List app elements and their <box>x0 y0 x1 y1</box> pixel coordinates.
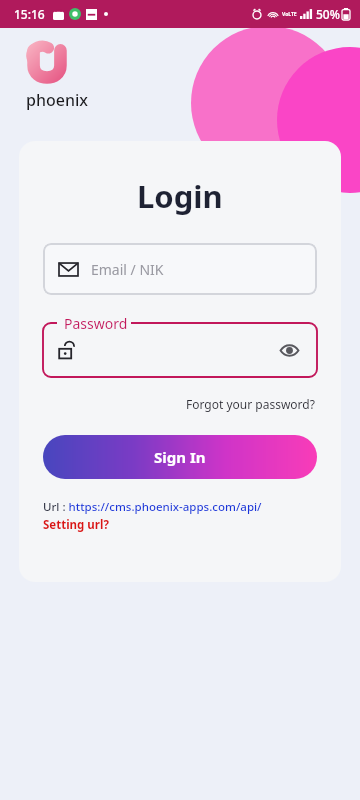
staticText: Setting url? <box>43 517 109 533</box>
button[interactable]: Sign In <box>43 435 317 479</box>
button[interactable]: Url : https://cms.phoenix-apps.com/api/ <box>43 499 317 533</box>
staticText: 50% <box>316 6 340 22</box>
staticText: Url : https://cms.phoenix-apps.com/api/ <box>43 499 262 515</box>
staticText: Login <box>137 175 223 217</box>
staticText: VoLTE <box>282 11 297 18</box>
staticText: Password <box>64 314 128 333</box>
button[interactable]: Email / NIK <box>43 243 317 295</box>
button[interactable]: Forgot your password? <box>184 393 317 415</box>
staticText: Email / NIK <box>91 260 164 279</box>
button[interactable]: Show password <box>276 337 302 363</box>
staticText: 15:16 <box>14 6 45 22</box>
staticText: Sign In <box>154 447 206 467</box>
staticText: Forgot your password? <box>186 396 315 412</box>
button[interactable]: Show password <box>43 323 317 377</box>
staticText: phoenix <box>26 89 88 111</box>
